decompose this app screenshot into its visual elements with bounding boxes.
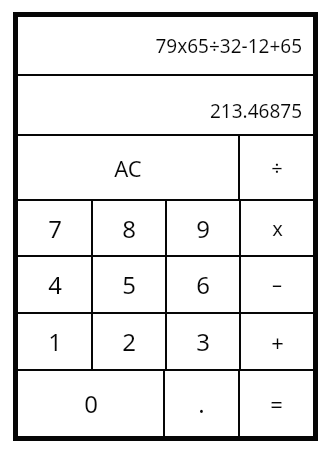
button[interactable]: 6 — [167, 257, 239, 312]
button[interactable]: x — [241, 201, 313, 255]
button[interactable]: 9 — [167, 201, 239, 255]
staticText: 9 — [196, 212, 210, 245]
button[interactable]: AC — [18, 136, 238, 199]
button[interactable]: 79x65÷32-12+65 — [18, 17, 313, 74]
button[interactable]: 5 — [93, 257, 165, 312]
staticText: ÷ — [271, 154, 283, 181]
staticText: = — [270, 389, 283, 419]
staticText: 6 — [196, 268, 210, 301]
staticText: x — [272, 215, 283, 242]
staticText: 79x65÷32-12+65 — [155, 33, 302, 59]
button[interactable]: 2 — [93, 314, 165, 369]
button[interactable]: 3 — [167, 314, 239, 369]
button[interactable]: . — [165, 371, 238, 436]
button[interactable]: 8 — [93, 201, 165, 255]
staticText: – — [272, 271, 282, 298]
staticText: AC — [114, 153, 142, 183]
staticText: 5 — [122, 268, 136, 301]
button[interactable]: + — [241, 314, 313, 369]
button[interactable]: ÷ — [240, 136, 313, 199]
staticText: 0 — [84, 387, 98, 420]
staticText: 3 — [196, 325, 210, 358]
button[interactable]: 7 — [18, 201, 91, 255]
staticText: 213.46875 — [209, 98, 302, 124]
staticText: 2 — [122, 325, 136, 358]
staticText: 7 — [48, 212, 62, 245]
button[interactable]: – — [241, 257, 313, 312]
staticText: 8 — [122, 212, 136, 245]
staticText: 4 — [48, 268, 62, 301]
button[interactable]: 213.46875 — [18, 76, 313, 134]
button[interactable]: = — [240, 371, 313, 436]
button[interactable]: 4 — [18, 257, 91, 312]
staticText: 1 — [48, 325, 62, 358]
staticText: . — [198, 387, 205, 420]
button[interactable]: 0 — [18, 371, 163, 436]
staticText: + — [271, 327, 284, 357]
button[interactable]: 1 — [18, 314, 91, 369]
